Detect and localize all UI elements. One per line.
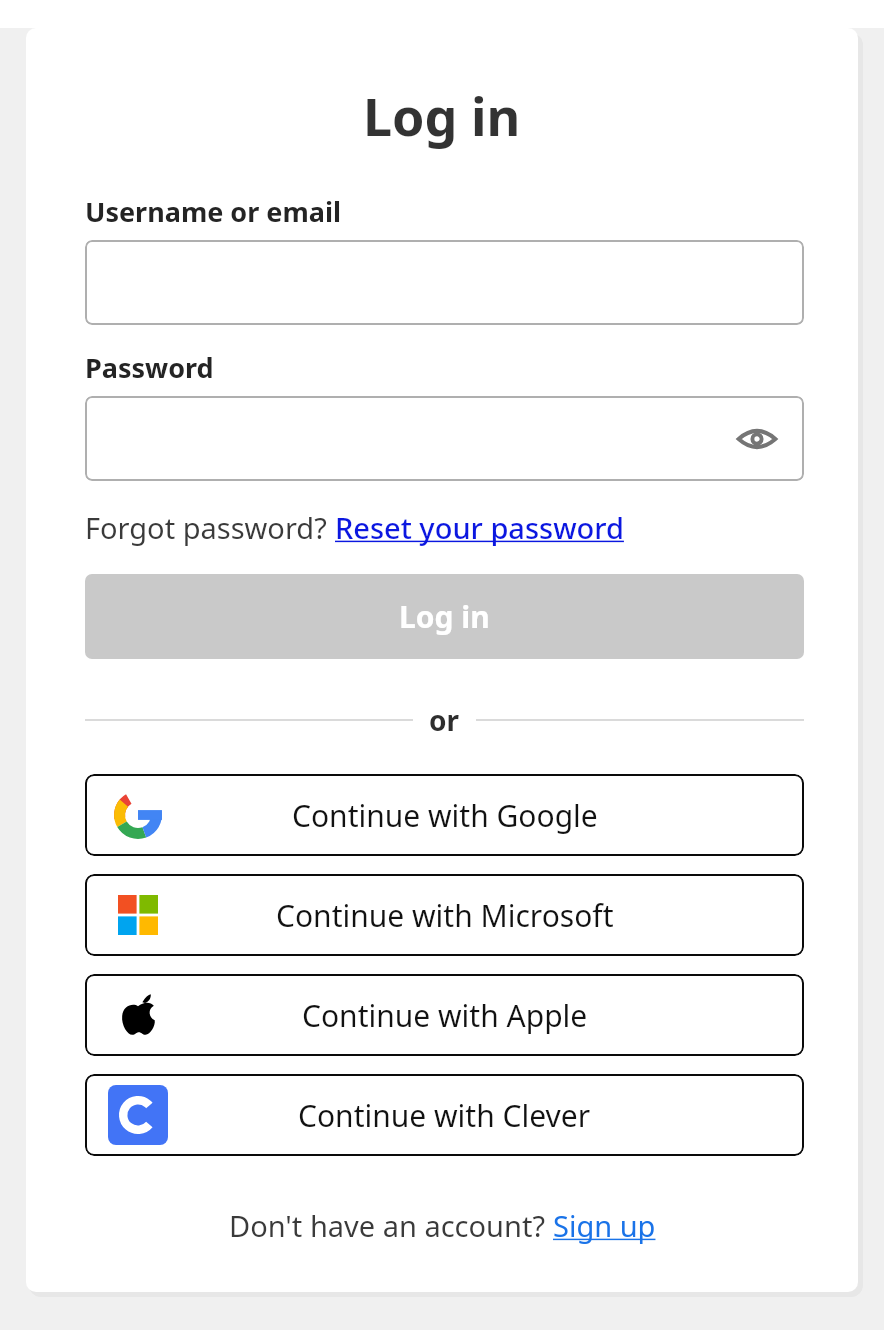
staticText: Continue with Apple <box>302 995 588 1036</box>
staticText: Continue with Clever <box>298 1095 591 1136</box>
button[interactable]: Username or email field <box>85 240 804 325</box>
staticText: Password <box>85 349 214 386</box>
staticText: Log in <box>399 596 490 637</box>
staticText: Continue with Microsoft <box>276 895 614 936</box>
button[interactable]: Continue with Google <box>85 774 804 856</box>
staticText: Sign up <box>553 1206 656 1245</box>
staticText: Username or email <box>85 193 342 230</box>
button[interactable]: Continue with Apple <box>85 974 804 1056</box>
button[interactable]: Continue with Clever <box>85 1074 804 1156</box>
button[interactable]: Sign up <box>553 1206 656 1245</box>
staticText: Don't have an account? <box>229 1206 553 1245</box>
staticText: or <box>429 701 460 739</box>
button[interactable]: Show password <box>730 412 784 466</box>
staticText: Forgot password? <box>85 508 335 547</box>
staticText: Log in <box>363 80 521 151</box>
button[interactable]: Password field <box>85 396 804 481</box>
button[interactable]: Log in <box>85 574 804 659</box>
staticText: Reset your password <box>335 508 624 547</box>
button[interactable]: Reset your password <box>335 508 624 547</box>
button[interactable]: Continue with Microsoft <box>85 874 804 956</box>
staticText: Continue with Google <box>292 795 598 836</box>
